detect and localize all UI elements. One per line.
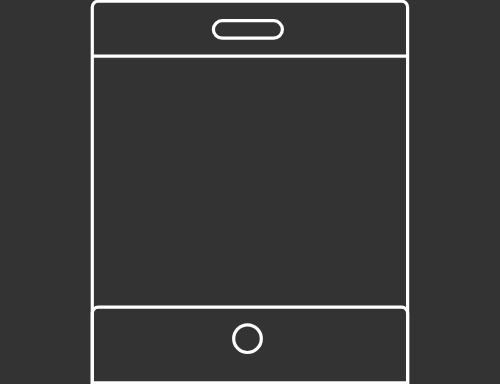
- button[interactable]: Home: [230, 321, 266, 357]
